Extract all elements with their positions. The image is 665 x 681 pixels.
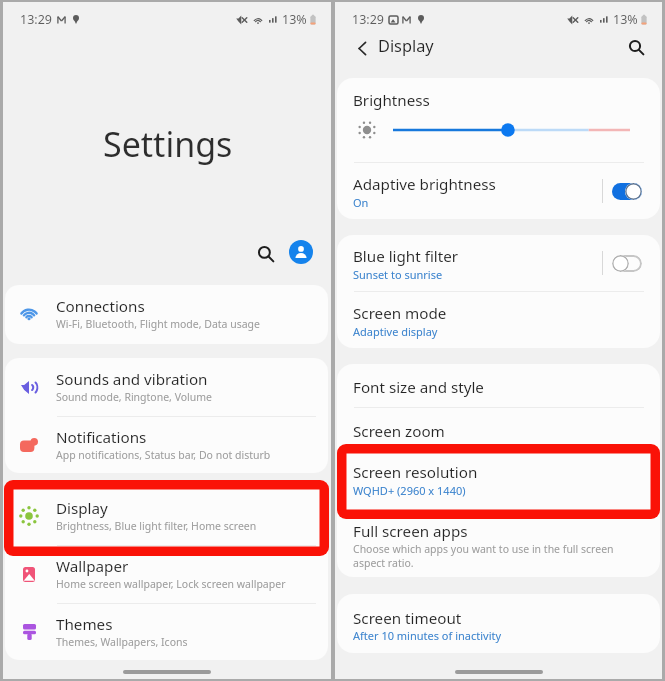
staticText: Screen zoom [353,421,445,442]
button[interactable]: Search [621,32,651,62]
staticText: Home screen wallpaper, Lock screen wallp… [56,577,286,591]
staticText: App notifications, Status bar, Do not di… [56,448,271,462]
staticText: Themes, Wallpapers, Icons [56,635,188,649]
button[interactable]: Blue light filter [337,235,660,291]
staticText: Screen resolution [353,462,478,483]
staticText: Adaptive display [353,324,438,339]
staticText: Full screen apps [353,521,468,542]
staticText: Connections [56,296,145,317]
staticText: Sound mode, Ringtone, Volume [56,390,213,404]
button[interactable]: Screen zoom [337,408,660,451]
button[interactable]: Account [289,240,313,264]
button[interactable]: Sounds and vibration [5,358,328,416]
staticText: On [353,195,369,210]
button[interactable]: Full screen apps [337,507,660,577]
staticText: Sounds and vibration [56,369,208,390]
button[interactable]: Screen resolution [337,451,660,507]
staticText: 13:29 [352,11,384,28]
staticText: Notifications [56,427,147,448]
staticText: After 10 minutes of inactivity [353,628,502,643]
button[interactable]: Back [344,30,380,66]
staticText: Font size and style [353,377,484,398]
staticText: Adaptive brightness [353,174,496,195]
button[interactable]: Wallpaper [5,545,328,603]
button[interactable]: Toggle on [612,183,642,200]
button[interactable]: Search [252,240,280,268]
staticText: Screen mode [353,303,447,324]
staticText: 13:29 [20,11,52,28]
staticText: Display [56,498,108,519]
button[interactable]: Themes [5,603,328,660]
button[interactable]: Notifications [5,416,328,473]
button[interactable]: Toggle off [612,255,642,272]
button[interactable]: Connections [5,285,328,343]
staticText: 13% [282,11,307,28]
staticText: Display [378,35,434,57]
staticText: Wallpaper [56,556,129,577]
button[interactable]: Screen mode [337,292,660,348]
button[interactable]: Screen timeout [337,594,660,653]
staticText: Screen timeout [353,608,462,629]
staticText: Sunset to sunrise [353,267,443,282]
staticText: 13% [613,11,638,28]
button[interactable]: Display [5,487,328,545]
staticText: Settings [103,121,233,167]
staticText: Wi-Fi, Bluetooth, Flight mode, Data usag… [56,317,261,331]
staticText: Brightness [353,90,430,111]
staticText: Brightness, Blue light filter, Home scre… [56,519,257,533]
staticText: Themes [56,614,113,635]
staticText: Choose which apps you want to use in the… [353,542,625,570]
button[interactable]: Font size and style [337,364,660,407]
staticText: WQHD+ (2960 x 1440) [353,483,466,498]
button[interactable]: Adaptive brightness [337,163,660,219]
staticText: Blue light filter [353,246,459,267]
